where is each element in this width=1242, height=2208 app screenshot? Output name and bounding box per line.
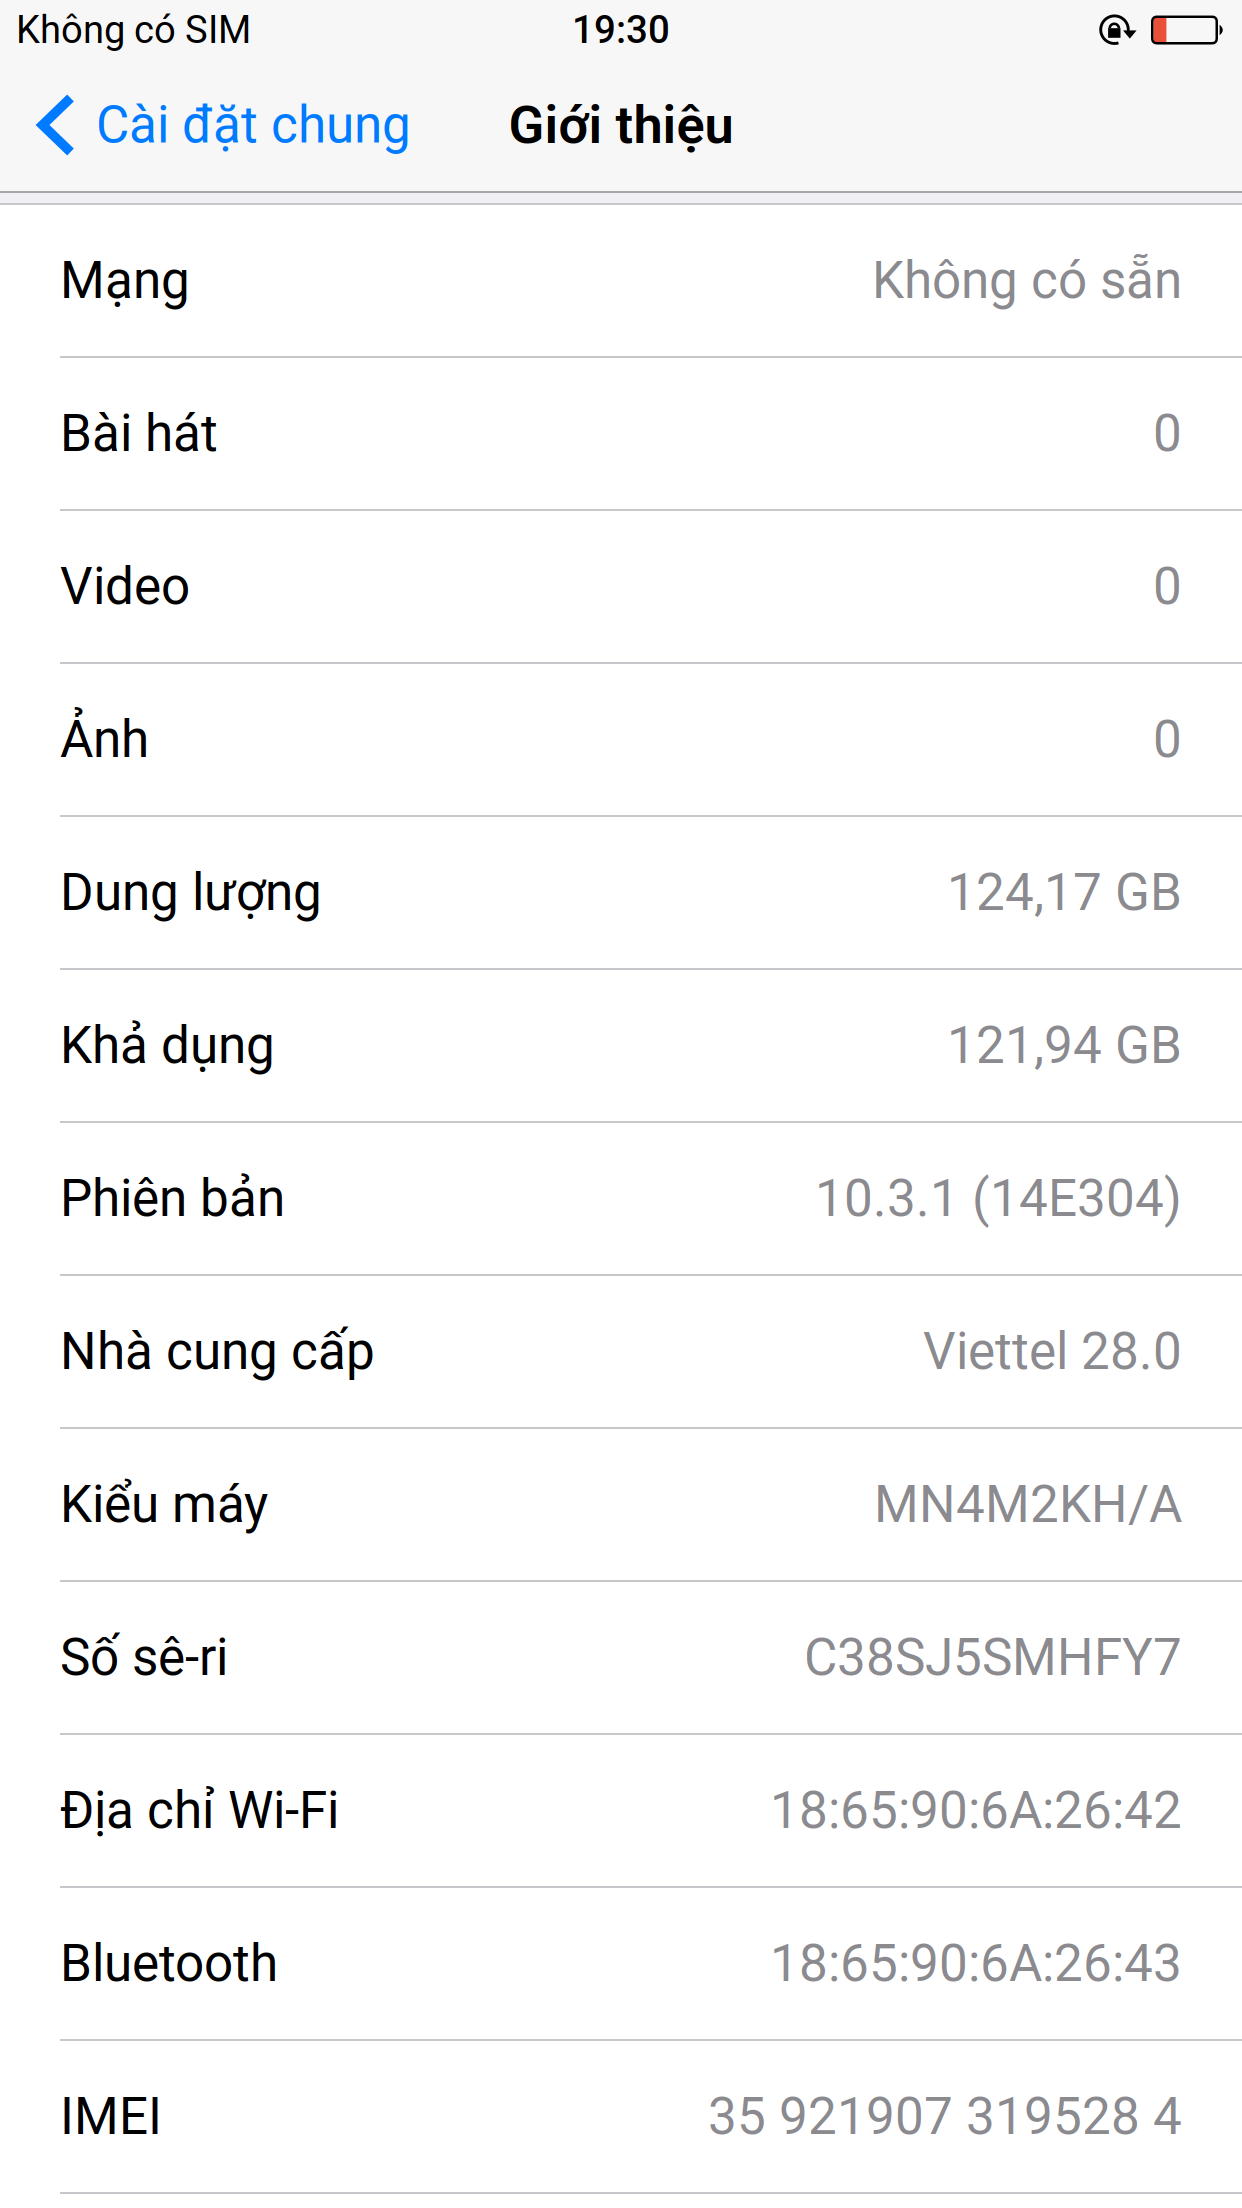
button[interactable]: Bài hát — [0, 358, 1242, 511]
staticText: Không có sẵn — [872, 250, 1182, 310]
button[interactable]: Video — [0, 511, 1242, 664]
staticText: Kiểu máy — [60, 1474, 268, 1534]
staticText: Khả dụng — [60, 1015, 275, 1075]
staticText: 18:65:90:6A:26:43 — [770, 1933, 1182, 1993]
staticText: 19:30 — [572, 7, 670, 52]
staticText: 0 — [1153, 403, 1182, 463]
staticText: Giới thiệu — [508, 94, 733, 156]
staticText: Video — [60, 556, 190, 616]
button[interactable]: Địa chỉ Wi-Fi — [0, 1735, 1242, 1888]
button[interactable]: Back to Cài đặt chung — [0, 59, 427, 190]
button[interactable]: Số sê-ri — [0, 1582, 1242, 1735]
button[interactable]: IMEI — [0, 2041, 1242, 2194]
staticText: Viettel 28.0 — [923, 1321, 1182, 1381]
button[interactable]: Mạng — [0, 205, 1242, 358]
staticText: Ảnh — [60, 709, 149, 769]
staticText: Nhà cung cấp — [60, 1321, 375, 1381]
staticText: Số sê-ri — [60, 1627, 228, 1687]
staticText: Mạng — [60, 250, 190, 310]
button[interactable]: Dung lượng — [0, 817, 1242, 970]
staticText: Phiên bản — [60, 1168, 285, 1228]
staticText: 0 — [1153, 709, 1182, 769]
staticText: 18:65:90:6A:26:42 — [770, 1780, 1182, 1840]
staticText: IMEI — [60, 2086, 162, 2146]
button[interactable]: Nhà cung cấp — [0, 1276, 1242, 1429]
staticText: Địa chỉ Wi-Fi — [60, 1780, 339, 1840]
button[interactable]: Kiểu máy — [0, 1429, 1242, 1582]
staticText: 10.3.1 (14E304) — [815, 1168, 1182, 1228]
staticText: 121,94 GB — [947, 1015, 1182, 1075]
button[interactable]: Bluetooth — [0, 1888, 1242, 2041]
staticText: C38SJ5SMHFY7 — [804, 1627, 1182, 1687]
staticText: MN4M2KH/A — [874, 1474, 1182, 1534]
staticText: 0 — [1153, 556, 1182, 616]
staticText: Bài hát — [60, 403, 218, 463]
staticText: Cài đặt chung — [96, 95, 411, 155]
staticText: 124,17 GB — [947, 862, 1182, 922]
staticText: 35 921907 319528 4 — [708, 2086, 1182, 2146]
button[interactable]: Phiên bản — [0, 1123, 1242, 1276]
button[interactable]: Ảnh — [0, 664, 1242, 817]
staticText: Dung lượng — [60, 862, 322, 922]
staticText: Không có SIM — [16, 8, 251, 52]
button[interactable]: Khả dụng — [0, 970, 1242, 1123]
staticText: Bluetooth — [60, 1933, 278, 1993]
